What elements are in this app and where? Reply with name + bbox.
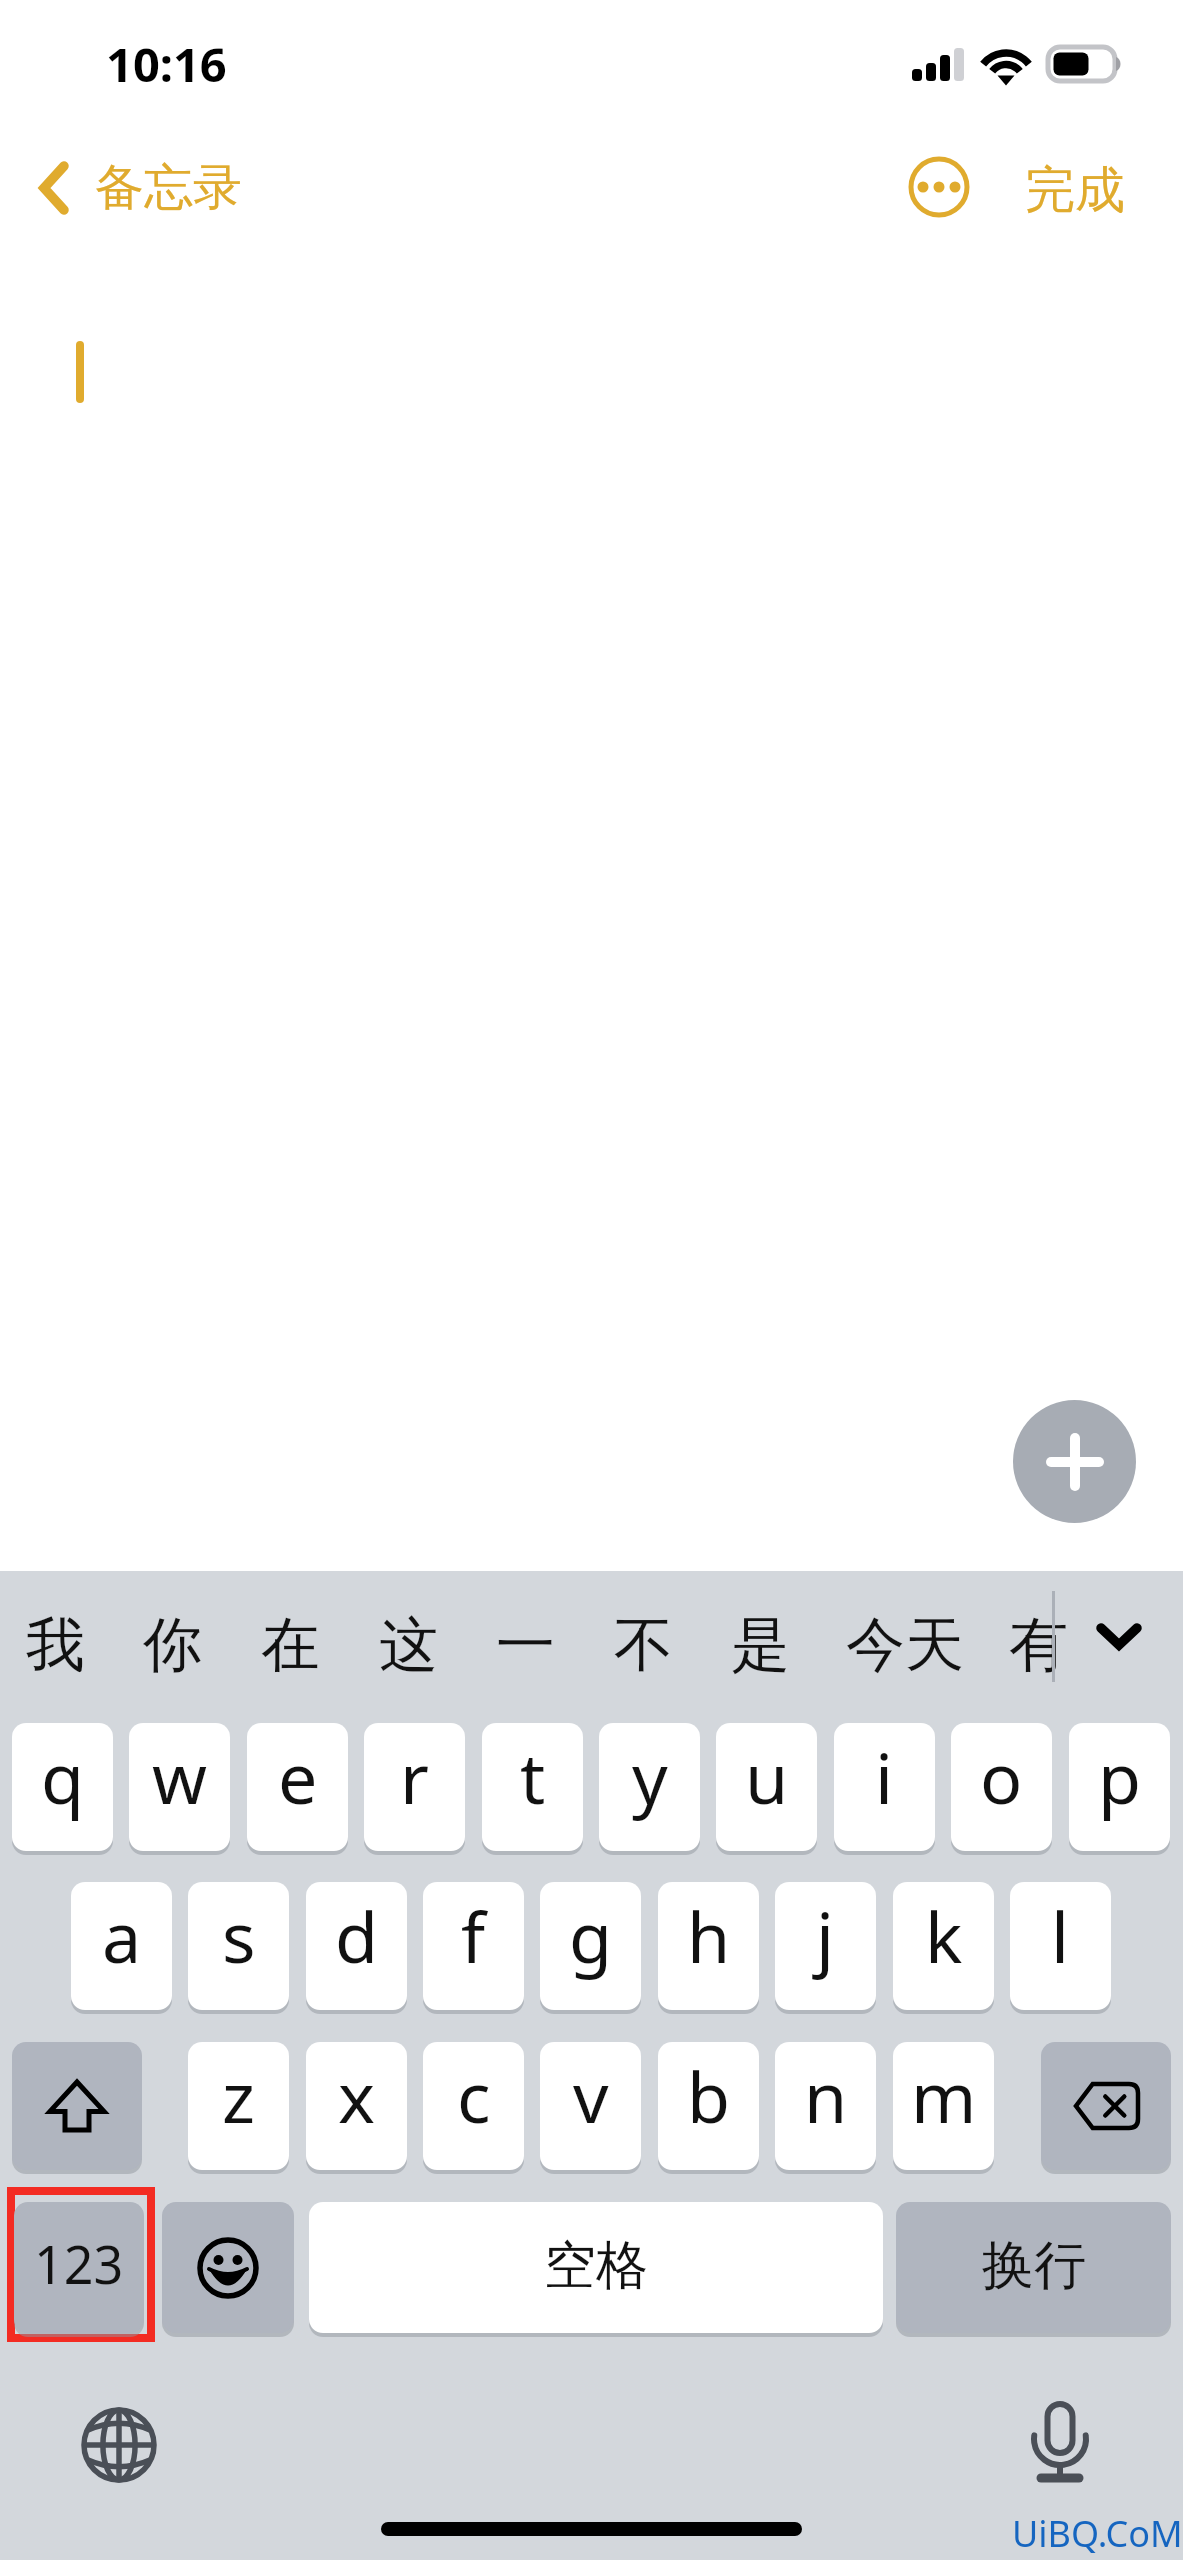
staticText: 换行 [982, 2233, 1086, 2299]
staticText: p [1098, 1729, 1142, 1824]
staticText: c [457, 2048, 491, 2143]
staticText: 一 [496, 1608, 555, 1682]
button[interactable]: 完成 [1019, 149, 1129, 225]
button[interactable]: c [423, 2042, 524, 2170]
button[interactable]: k [893, 1882, 994, 2010]
button[interactable]: 有 [1008, 1604, 1068, 1686]
staticText: 不 [614, 1608, 673, 1682]
staticText: a [102, 1888, 142, 1983]
button[interactable]: e [247, 1723, 348, 1851]
staticText: f [461, 1888, 486, 1983]
staticText: 空格 [544, 2233, 648, 2299]
staticText: 10:16 [106, 32, 227, 96]
staticText: 今天 [846, 1608, 964, 1682]
staticText: e [278, 1729, 318, 1824]
staticText: y [632, 1729, 668, 1824]
button[interactable]: j [775, 1882, 876, 2010]
button[interactable]: Emoji [162, 2202, 294, 2333]
staticText: UiBQ.CoM [1012, 2509, 1183, 2558]
button[interactable]: h [658, 1882, 759, 2010]
staticText: n [804, 2048, 848, 2143]
button[interactable]: 不 [613, 1604, 673, 1686]
staticText: 我 [26, 1608, 85, 1682]
staticText: t [520, 1729, 546, 1824]
button[interactable]: n [775, 2042, 876, 2170]
button[interactable]: y [599, 1723, 700, 1851]
button[interactable]: o [951, 1723, 1052, 1851]
button[interactable]: Shift [12, 2042, 142, 2170]
staticText: q [41, 1729, 85, 1824]
button[interactable]: z [188, 2042, 289, 2170]
button[interactable]: s [188, 1882, 289, 2010]
button[interactable]: d [306, 1882, 407, 2010]
staticText: d [335, 1888, 379, 1983]
button[interactable]: 是 [730, 1604, 790, 1686]
button[interactable]: 我 [25, 1604, 85, 1686]
button[interactable]: 一 [495, 1604, 555, 1686]
staticText: 123 [34, 2228, 124, 2299]
button[interactable]: u [716, 1723, 817, 1851]
staticText: i [875, 1729, 894, 1824]
staticText: 你 [143, 1608, 202, 1682]
button[interactable]: 你 [142, 1604, 202, 1686]
staticText: 这 [379, 1608, 438, 1682]
staticText: w [152, 1729, 208, 1824]
staticText: s [222, 1888, 256, 1983]
button[interactable]: i [834, 1723, 935, 1851]
button[interactable]: 123 [14, 2202, 144, 2333]
button[interactable]: f [423, 1882, 524, 2010]
button[interactable]: Collapse keyboard [1091, 1617, 1147, 1653]
staticText: 完成 [1025, 159, 1125, 222]
button[interactable]: g [540, 1882, 641, 2010]
button[interactable]: w [129, 1723, 230, 1851]
button[interactable]: t [482, 1723, 583, 1851]
staticText: 是 [731, 1608, 790, 1682]
button[interactable]: m [893, 2042, 994, 2170]
button[interactable]: 换行 [896, 2202, 1171, 2333]
button[interactable]: 备忘录 [32, 150, 242, 226]
button[interactable]: Dictation [1031, 2401, 1093, 2487]
button[interactable]: r [364, 1723, 465, 1851]
staticText: l [1051, 1888, 1070, 1983]
button[interactable]: a [71, 1882, 172, 2010]
button[interactable]: v [540, 2042, 641, 2170]
staticText: b [687, 2048, 731, 2143]
button[interactable]: 在 [260, 1604, 320, 1686]
staticText: 在 [261, 1608, 320, 1682]
staticText: v [573, 2048, 609, 2143]
staticText: 备忘录 [95, 157, 242, 219]
staticText: o [980, 1729, 1023, 1824]
button[interactable]: 这 [378, 1604, 438, 1686]
staticText: h [687, 1888, 731, 1983]
button[interactable]: Backspace [1041, 2042, 1171, 2170]
staticText: m [911, 2048, 977, 2143]
button[interactable]: 空格 [309, 2202, 883, 2333]
button[interactable]: b [658, 2042, 759, 2170]
staticText: z [222, 2048, 255, 2143]
button[interactable]: q [12, 1723, 113, 1851]
staticText: k [925, 1888, 963, 1983]
button[interactable]: Change keyboard [75, 2401, 163, 2489]
button[interactable]: Add [1013, 1400, 1136, 1523]
button[interactable]: x [306, 2042, 407, 2170]
button[interactable]: More options [902, 150, 976, 224]
staticText: j [816, 1888, 835, 1983]
staticText: x [338, 2048, 376, 2143]
button[interactable]: p [1069, 1723, 1170, 1851]
staticText: 有 [1009, 1608, 1068, 1682]
staticText: g [569, 1888, 613, 1983]
button[interactable]: 今天 [845, 1604, 965, 1686]
button[interactable]: l [1010, 1882, 1111, 2010]
staticText: u [745, 1729, 789, 1824]
staticText: r [400, 1729, 429, 1824]
